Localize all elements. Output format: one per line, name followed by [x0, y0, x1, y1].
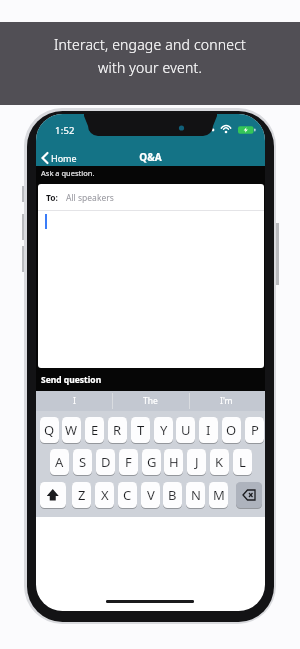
button[interactable]: T — [131, 417, 150, 444]
staticText: K — [215, 453, 224, 471]
staticText: Y — [160, 421, 168, 439]
staticText: G — [147, 453, 157, 471]
staticText: H — [169, 453, 179, 471]
button[interactable] — [236, 482, 262, 509]
button[interactable]: M — [209, 482, 228, 509]
staticText: U — [181, 421, 191, 439]
staticText: P — [251, 421, 259, 439]
button[interactable]: Z — [72, 482, 91, 509]
button[interactable]: V — [141, 482, 160, 509]
button[interactable]: Home — [38, 150, 98, 167]
staticText: with your event. — [98, 58, 203, 77]
staticText: J — [195, 453, 199, 471]
staticText: All speakers — [66, 192, 114, 204]
button[interactable]: E — [85, 417, 104, 444]
button[interactable]: B — [163, 482, 182, 509]
button[interactable]: P — [245, 417, 264, 444]
staticText: Z — [78, 486, 86, 504]
staticText: C — [123, 486, 132, 504]
staticText: E — [91, 421, 99, 439]
staticText: B — [168, 486, 177, 504]
staticText: T — [137, 421, 145, 439]
staticText: R — [113, 421, 122, 439]
button[interactable]: I'm — [188, 391, 265, 411]
button[interactable]: A — [50, 449, 69, 476]
staticText: S — [79, 453, 87, 471]
staticText: N — [191, 486, 201, 504]
staticText: A — [55, 453, 64, 471]
button[interactable]: J — [187, 449, 206, 476]
staticText: I — [73, 395, 76, 407]
button[interactable]: L — [233, 449, 252, 476]
button[interactable]: X — [95, 482, 114, 509]
staticText: To: — [46, 192, 59, 204]
button[interactable]: I — [36, 391, 112, 411]
button[interactable]: N — [186, 482, 205, 509]
staticText: 1:52 — [55, 124, 75, 137]
staticText: I'm — [220, 395, 233, 407]
staticText: The — [143, 395, 158, 407]
staticText: D — [101, 453, 111, 471]
staticText: Q — [44, 421, 55, 439]
button[interactable]: F — [119, 449, 138, 476]
staticText: I — [206, 421, 211, 439]
staticText: Home — [51, 152, 77, 164]
button[interactable]: H — [164, 449, 183, 476]
button[interactable]: G — [142, 449, 161, 476]
button[interactable]: S — [73, 449, 92, 476]
staticText: V — [147, 486, 155, 504]
staticText: Interact, engage and connect — [54, 35, 247, 54]
button[interactable]: Send question — [36, 371, 146, 390]
staticText: O — [226, 421, 237, 439]
button[interactable]: C — [118, 482, 137, 509]
button[interactable] — [40, 482, 66, 509]
staticText: X — [101, 486, 109, 504]
button[interactable]: Y — [154, 417, 173, 444]
staticText: Q&A — [36, 150, 265, 164]
staticText: W — [65, 421, 78, 439]
staticText: L — [239, 453, 246, 471]
button[interactable]: O — [222, 417, 241, 444]
button[interactable]: The — [112, 391, 188, 411]
button[interactable]: W — [62, 417, 81, 444]
button[interactable]: K — [210, 449, 229, 476]
button[interactable]: I — [199, 417, 218, 444]
staticText: F — [125, 453, 132, 471]
staticText: M — [213, 486, 225, 504]
button[interactable]: R — [108, 417, 127, 444]
staticText: Ask a question. — [41, 168, 95, 178]
button[interactable]: D — [96, 449, 115, 476]
button[interactable]: U — [176, 417, 195, 444]
button[interactable]: Q — [40, 417, 59, 444]
staticText: Send question — [41, 374, 102, 386]
